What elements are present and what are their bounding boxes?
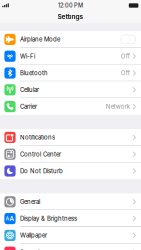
button[interactable]: Airplane Mode [0, 31, 141, 48]
staticText: Network [106, 103, 130, 110]
staticText: Settings [57, 13, 83, 21]
button[interactable]: General [0, 193, 141, 210]
button[interactable]: Sounds [0, 244, 141, 250]
button[interactable]: Control Center [0, 146, 141, 163]
staticText: Off [121, 69, 130, 77]
button[interactable]: Do Not Disturb [0, 163, 141, 179]
staticText: 12:00 PM [58, 2, 83, 9]
button[interactable]: Carrier [0, 98, 141, 115]
staticText: Sounds [20, 249, 43, 250]
staticText: Cellular [20, 86, 39, 93]
button[interactable]: Notifications [0, 129, 141, 146]
staticText: Airplane Mode [20, 36, 60, 43]
staticText: A [9, 215, 14, 223]
staticText: Off [121, 53, 130, 60]
button[interactable]: Bluetooth [0, 65, 141, 81]
staticText: Do Not Disturb [20, 167, 63, 175]
staticText: A [6, 216, 9, 221]
staticText: Carrier [20, 103, 37, 110]
staticText: Wallpaper [20, 232, 47, 239]
button[interactable]: A [0, 210, 141, 227]
staticText: Bluetooth [20, 69, 48, 77]
staticText: Wi-Fi [20, 53, 35, 60]
button[interactable]: Wallpaper [0, 227, 141, 244]
button[interactable]: Cellular [0, 81, 141, 98]
staticText: General [20, 198, 40, 205]
button[interactable]: Wi-Fi [0, 48, 141, 65]
staticText: Control Center [20, 151, 61, 158]
staticText: Notifications [20, 134, 55, 141]
staticText: Display & Brightness [20, 215, 77, 222]
